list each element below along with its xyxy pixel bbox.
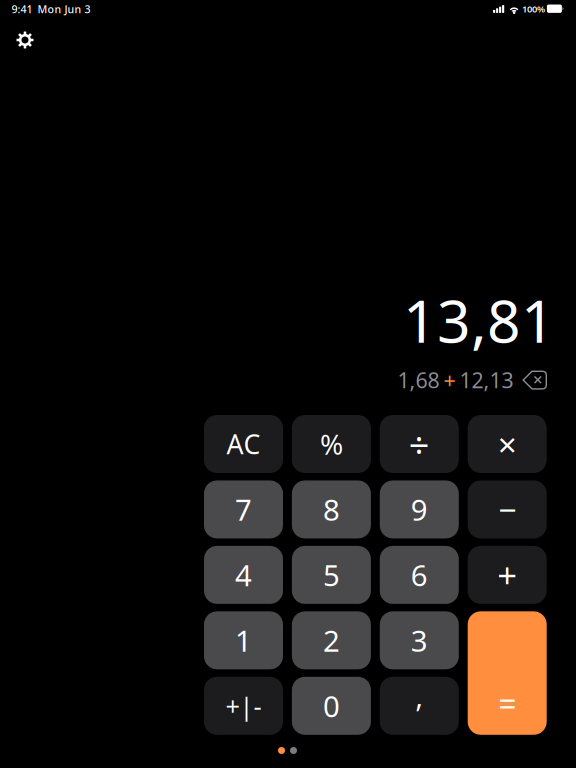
- staticText: 8: [323, 490, 340, 529]
- staticText: 7: [235, 490, 252, 529]
- staticText: 9: [411, 490, 428, 529]
- button[interactable]: Delete: [513, 368, 547, 393]
- button[interactable]: 3: [380, 611, 459, 669]
- button[interactable]: 7: [204, 480, 283, 538]
- button[interactable]: =: [468, 611, 547, 735]
- button[interactable]: 0: [292, 677, 371, 735]
- button[interactable]: +|-: [204, 677, 283, 735]
- button[interactable]: 2: [292, 611, 371, 669]
- staticText: 100%: [522, 3, 545, 15]
- staticText: 4: [235, 555, 252, 594]
- staticText: %: [320, 425, 343, 463]
- button[interactable]: 6: [380, 546, 459, 604]
- button[interactable]: 5: [292, 546, 371, 604]
- button[interactable]: 1: [204, 611, 283, 669]
- button[interactable]: ÷: [380, 415, 459, 473]
- button[interactable]: AC: [204, 415, 283, 473]
- staticText: 6: [411, 555, 428, 594]
- button[interactable]: ×: [468, 415, 547, 473]
- staticText: ÷: [409, 420, 430, 468]
- button[interactable]: 8: [292, 480, 371, 538]
- staticText: 3: [411, 621, 428, 660]
- staticText: 5: [323, 555, 340, 594]
- button[interactable]: +: [468, 546, 547, 604]
- staticText: AC: [226, 426, 260, 462]
- staticText: 1: [235, 621, 252, 660]
- staticText: 12,13: [459, 366, 513, 394]
- staticText: −: [498, 488, 516, 531]
- staticText: ,: [415, 676, 423, 715]
- staticText: 2: [323, 621, 340, 660]
- staticText: 0: [323, 686, 340, 725]
- staticText: 1,68: [397, 366, 439, 394]
- staticText: Mon Jun 3: [37, 2, 90, 16]
- staticText: =: [498, 682, 516, 724]
- staticText: ×: [498, 422, 517, 466]
- staticText: 13,81: [403, 281, 555, 359]
- button[interactable]: ,: [380, 677, 459, 735]
- button[interactable]: %: [292, 415, 371, 473]
- staticText: +: [443, 366, 455, 394]
- staticText: +: [497, 552, 517, 598]
- button[interactable]: 4: [204, 546, 283, 604]
- staticText: +|-: [225, 689, 261, 723]
- button[interactable]: −: [468, 480, 547, 538]
- button[interactable]: 9: [380, 480, 459, 538]
- staticText: 9:41: [11, 2, 32, 16]
- button[interactable]: Settings: [8, 24, 42, 56]
